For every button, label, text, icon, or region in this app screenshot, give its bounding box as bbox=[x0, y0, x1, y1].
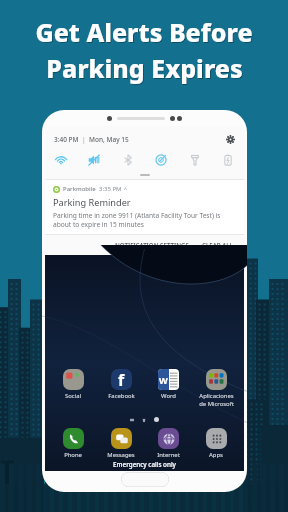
staticText: Apps bbox=[209, 451, 223, 459]
staticText: Internet bbox=[157, 451, 180, 459]
staticText: Phone bbox=[64, 451, 82, 459]
button[interactable]: CLEAR ALL bbox=[199, 239, 236, 251]
staticText: ^ bbox=[124, 186, 127, 193]
staticText: Parking Expires bbox=[47, 52, 244, 86]
staticText: Get Alerts Before bbox=[35, 15, 253, 49]
button[interactable]: Home button bbox=[121, 472, 169, 487]
button[interactable]: Bluetooth bbox=[117, 149, 139, 171]
button[interactable]: Apps bbox=[194, 427, 238, 460]
staticText: Word bbox=[161, 392, 176, 400]
staticText: Parking Expires bbox=[46, 51, 243, 85]
button[interactable]: Power saving bbox=[217, 149, 239, 171]
button[interactable]: f bbox=[99, 368, 143, 401]
staticText: f bbox=[118, 369, 125, 390]
staticText: | bbox=[82, 135, 86, 144]
staticText: Facebook bbox=[108, 392, 135, 400]
button[interactable]: Sync bbox=[150, 149, 172, 171]
staticText: CLEAR ALL bbox=[202, 241, 233, 249]
staticText: Mon, May 15 bbox=[89, 135, 129, 144]
staticText: Get Alerts Before bbox=[36, 16, 254, 50]
staticText: Parkmobile bbox=[63, 185, 96, 193]
staticText: 3:35 PM bbox=[99, 185, 122, 193]
button[interactable]: Phone bbox=[51, 427, 95, 460]
button[interactable]: NOTIFICATION SETTINGS bbox=[112, 239, 192, 251]
button[interactable]: Parkmobile bbox=[45, 180, 244, 234]
button[interactable]: Aplicaciones de Microsoft bbox=[194, 368, 238, 408]
staticText: Parking time in zone 9911 (Atlanta Facil… bbox=[53, 211, 236, 229]
staticText: Messages bbox=[107, 451, 135, 459]
button[interactable]: Apps list bbox=[130, 418, 134, 422]
button[interactable]: Flashlight bbox=[184, 149, 206, 171]
staticText: 3:40 PM bbox=[54, 135, 79, 144]
button[interactable]: W bbox=[146, 368, 190, 401]
button[interactable]: Page 3 bbox=[154, 417, 159, 422]
button[interactable]: Wi-Fi bbox=[50, 149, 72, 171]
button[interactable]: Home bbox=[142, 418, 146, 422]
button[interactable]: Internet bbox=[146, 427, 190, 460]
staticText: Social bbox=[65, 392, 81, 400]
button[interactable]: Social bbox=[51, 368, 95, 401]
staticText: W bbox=[159, 374, 168, 386]
button[interactable]: Settings bbox=[223, 132, 237, 146]
staticText: NOTIFICATION SETTINGS bbox=[115, 241, 189, 249]
staticText: Aplicaciones de Microsoft bbox=[199, 392, 234, 407]
button[interactable]: Messages bbox=[99, 427, 143, 460]
button[interactable]: Sound off bbox=[83, 149, 105, 171]
staticText: Emergency calls only bbox=[45, 460, 244, 469]
staticText: Parking Reminder bbox=[53, 196, 131, 209]
